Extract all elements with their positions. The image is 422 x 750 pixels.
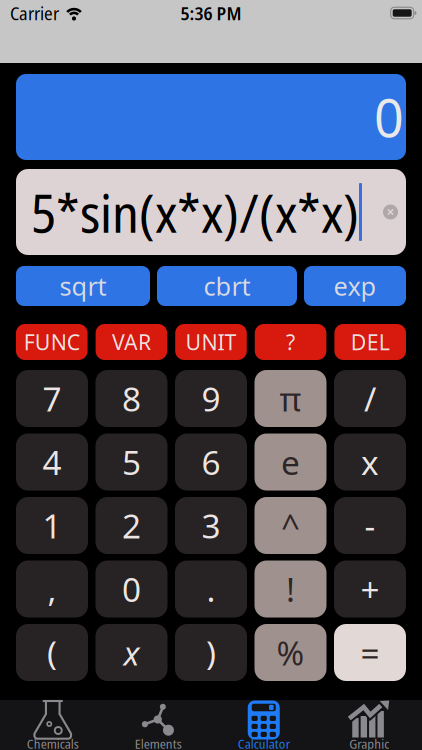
staticText: 0	[122, 567, 141, 611]
button[interactable]: =	[334, 624, 406, 681]
staticText: 2	[122, 503, 141, 548]
staticText: Chemicals	[27, 734, 79, 750]
button[interactable]: Calculator	[211, 700, 316, 750]
button[interactable]: x	[334, 433, 406, 490]
button[interactable]: )	[175, 624, 247, 681]
button[interactable]: 6	[175, 433, 247, 490]
staticText: VAR	[112, 328, 151, 356]
staticText: 5:36 PM	[180, 0, 241, 26]
button[interactable]: 9	[175, 370, 247, 427]
button[interactable]: Elements	[105, 700, 211, 750]
button[interactable]: Chemicals	[0, 700, 105, 750]
staticText: ^	[281, 503, 300, 548]
staticText: Graphic	[349, 734, 389, 750]
staticText: π	[279, 376, 301, 421]
button[interactable]: 4	[16, 433, 88, 490]
staticText: UNIT	[185, 328, 236, 356]
staticText: ?	[286, 328, 295, 356]
staticText: x	[123, 630, 139, 675]
button[interactable]: UNIT	[175, 324, 247, 360]
button[interactable]	[383, 204, 398, 219]
staticText: 6	[201, 440, 220, 484]
button[interactable]: -	[334, 497, 406, 554]
staticText: sqrt	[59, 269, 106, 303]
button[interactable]: !	[254, 560, 326, 617]
button[interactable]: (	[16, 624, 88, 681]
button[interactable]: x	[95, 624, 167, 681]
button[interactable]: 7	[16, 370, 88, 427]
button[interactable]: 3	[175, 497, 247, 554]
button[interactable]: +	[334, 560, 406, 617]
button[interactable]: VAR	[96, 324, 167, 360]
staticText: 1	[42, 503, 61, 548]
staticText: FUNC	[24, 328, 80, 356]
staticText: /	[364, 376, 376, 421]
staticText: .	[206, 567, 215, 611]
button[interactable]: %	[254, 624, 326, 681]
button[interactable]: Graphic	[316, 700, 422, 750]
button[interactable]: cbrt	[157, 266, 297, 306]
button[interactable]: 5	[95, 433, 167, 490]
button[interactable]: DEL	[334, 324, 406, 360]
button[interactable]: 8	[95, 370, 167, 427]
button[interactable]: 1	[16, 497, 88, 554]
staticText: Calculator	[238, 734, 290, 750]
button[interactable]: e	[254, 433, 326, 490]
staticText: 9	[201, 376, 220, 421]
staticText: e	[281, 440, 300, 484]
button[interactable]: π	[254, 370, 326, 427]
staticText: =	[360, 630, 379, 675]
staticText: exp	[333, 269, 376, 303]
staticText: )	[206, 630, 216, 675]
staticText: (	[47, 630, 57, 675]
button[interactable]: FUNC	[16, 324, 88, 360]
staticText: Carrier	[10, 0, 59, 26]
button[interactable]: 0	[95, 560, 167, 617]
button[interactable]: ?	[255, 324, 326, 360]
staticText: %	[276, 630, 304, 675]
staticText: x	[361, 440, 379, 484]
staticText: 5*sin(x*x)/(x*x)	[31, 176, 359, 248]
button[interactable]: exp	[304, 266, 406, 306]
button[interactable]: ^	[254, 497, 326, 554]
button[interactable]: 2	[95, 497, 167, 554]
staticText: DEL	[351, 328, 390, 356]
staticText: 4	[42, 440, 61, 484]
staticText: !	[286, 567, 295, 611]
button[interactable]: .	[175, 560, 247, 617]
staticText: +	[360, 567, 379, 611]
button[interactable]: sqrt	[16, 266, 150, 306]
staticText: 0	[374, 82, 404, 152]
staticText: 3	[201, 503, 220, 548]
staticText: 8	[122, 376, 141, 421]
button[interactable]: /	[334, 370, 406, 427]
button[interactable]: ,	[16, 560, 88, 617]
staticText: 7	[42, 376, 61, 421]
staticText: 5	[122, 440, 141, 484]
staticText: ,	[47, 567, 56, 611]
staticText: -	[364, 503, 375, 548]
staticText: Elements	[135, 734, 182, 750]
staticText: cbrt	[203, 269, 250, 303]
